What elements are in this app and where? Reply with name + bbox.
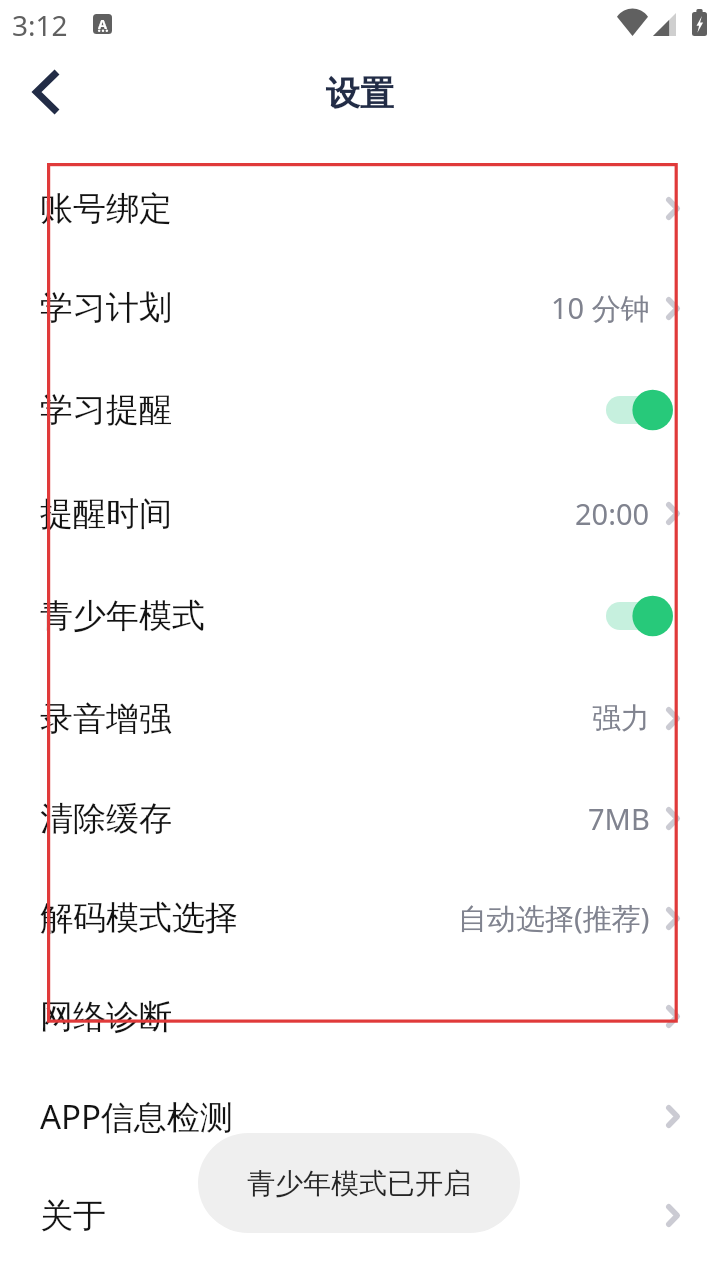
staticText: 强力	[592, 700, 650, 737]
staticText: 学习提醒	[40, 389, 172, 431]
staticText: 青少年模式已开启	[247, 1166, 471, 1201]
staticText: 3:12	[12, 6, 68, 44]
staticText: 清除缓存	[40, 798, 172, 840]
button[interactable]: 清除缓存	[0, 769, 720, 868]
button[interactable]: 解码模式选择	[0, 868, 720, 967]
staticText: 青少年模式	[40, 595, 205, 637]
staticText: A	[98, 15, 107, 33]
staticText: 7MB	[588, 799, 650, 838]
staticText: 10 分钟	[551, 288, 650, 328]
staticText: 解码模式选择	[40, 897, 238, 939]
staticText: 20:00	[575, 494, 650, 533]
button[interactable]: APP信息检测	[0, 1067, 720, 1166]
button[interactable]: 学习计划	[0, 258, 720, 357]
staticText: 网络诊断	[40, 996, 172, 1038]
staticText: 关于	[40, 1195, 106, 1237]
staticText: 提醒时间	[40, 493, 172, 535]
button[interactable]: Back	[17, 64, 73, 120]
button[interactable]: 学习提醒	[0, 357, 720, 463]
button[interactable]: 网络诊断	[0, 967, 720, 1066]
button[interactable]: 青少年模式	[0, 563, 720, 669]
staticText: 设置	[326, 72, 394, 115]
staticText: 学习计划	[40, 287, 172, 329]
staticText: 自动选择(推荐)	[458, 898, 650, 938]
button[interactable]: 关于	[0, 1166, 720, 1265]
staticText: 账号绑定	[40, 188, 172, 230]
button[interactable]: 录音增强	[0, 669, 720, 768]
staticText: 录音增强	[40, 698, 172, 740]
button[interactable]: 账号绑定	[0, 159, 720, 258]
button[interactable]: 提醒时间	[0, 464, 720, 563]
staticText: APP信息检测	[40, 1094, 234, 1139]
